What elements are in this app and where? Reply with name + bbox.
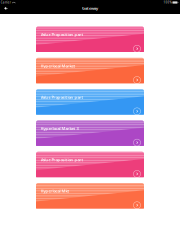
button[interactable]: Hyperlocal Market 3	[36, 120, 144, 147]
staticText: Hyperlocal Mkt	[40, 188, 69, 194]
staticText: 100%	[164, 1, 172, 4]
staticText: Carrier	[1, 1, 11, 4]
staticText: Value Proposition part	[40, 32, 83, 37]
button[interactable]: Value Proposition part	[36, 152, 144, 178]
staticText: Gateway	[82, 6, 98, 11]
button[interactable]: Back	[0, 5, 12, 11]
button[interactable]: Hyperlocal Market	[36, 58, 144, 84]
button[interactable]: Value Proposition part	[36, 89, 144, 116]
staticText: Value Proposition part	[40, 157, 83, 162]
staticText: Hyperlocal Market 3	[40, 126, 78, 131]
button[interactable]: Value Proposition part	[36, 26, 144, 53]
staticText: Hyperlocal Market	[40, 63, 75, 68]
staticText: Value Proposition part	[40, 94, 83, 100]
button[interactable]: Hyperlocal Mkt	[36, 183, 144, 209]
